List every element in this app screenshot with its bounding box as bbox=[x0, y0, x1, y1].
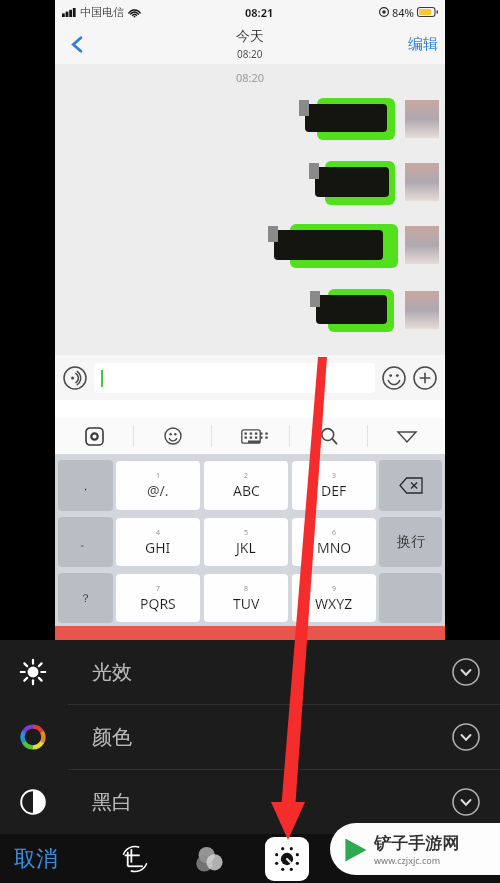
button[interactable]: 取消 bbox=[14, 845, 58, 873]
button[interactable]: 7 bbox=[116, 574, 200, 622]
button[interactable]: 调整 bbox=[265, 837, 309, 881]
staticText: JKL bbox=[236, 538, 256, 557]
staticText: 3 bbox=[332, 471, 337, 481]
staticText: 铲子手游网 bbox=[374, 833, 459, 854]
button[interactable]: 收起 bbox=[368, 418, 445, 454]
staticText: 5 bbox=[244, 528, 249, 538]
button[interactable] bbox=[328, 289, 394, 332]
staticText: PQRS bbox=[140, 594, 176, 613]
staticText: 1 bbox=[156, 471, 161, 481]
button[interactable] bbox=[290, 224, 398, 268]
staticText: 2 bbox=[244, 471, 249, 481]
staticText: 黑白 bbox=[92, 790, 132, 815]
button[interactable]: 搜索 bbox=[290, 418, 367, 454]
staticText: 4 bbox=[156, 528, 161, 538]
staticText: 取消 bbox=[14, 845, 58, 873]
button[interactable]: ， bbox=[58, 460, 113, 511]
button[interactable]: 4 bbox=[116, 518, 200, 566]
staticText: ， bbox=[80, 479, 91, 493]
button[interactable]: 滤镜 bbox=[188, 837, 232, 881]
button[interactable]: 返回 bbox=[59, 26, 95, 62]
button[interactable]: 标记 bbox=[340, 837, 384, 881]
button[interactable]: 9 bbox=[292, 574, 376, 622]
staticText: www.czjxjc.com bbox=[374, 854, 441, 866]
button[interactable] bbox=[325, 161, 395, 205]
button[interactable]: 编辑 bbox=[408, 35, 438, 54]
button[interactable]: 1 bbox=[116, 461, 200, 510]
staticText: 8 bbox=[244, 584, 249, 594]
staticText: 中国电信 bbox=[80, 5, 124, 19]
button[interactable] bbox=[317, 98, 395, 140]
staticText: 换行 bbox=[397, 533, 425, 551]
staticText: ？ bbox=[80, 591, 91, 605]
staticText: 编辑 bbox=[408, 35, 438, 54]
staticText: 9 bbox=[332, 584, 337, 594]
staticText: 08:21 bbox=[245, 5, 274, 20]
button[interactable]: 输入法 bbox=[55, 418, 133, 454]
staticText: 08:20 bbox=[236, 70, 265, 85]
button[interactable]: 3 bbox=[292, 461, 376, 510]
staticText: 7 bbox=[156, 584, 161, 594]
staticText: WXYZ bbox=[315, 594, 353, 613]
button[interactable]: 黑白 bbox=[0, 770, 500, 834]
staticText: 84% bbox=[392, 5, 414, 20]
button[interactable]: ？ bbox=[58, 573, 113, 623]
button[interactable]: 换行 bbox=[379, 517, 442, 567]
staticText: 今天 bbox=[236, 28, 264, 46]
button[interactable]: 删除 bbox=[379, 460, 442, 511]
button[interactable]: 5 bbox=[204, 518, 288, 566]
staticText: DEF bbox=[321, 481, 347, 500]
staticText: 光效 bbox=[92, 660, 132, 685]
staticText: 。 bbox=[80, 535, 91, 549]
staticText: 颜色 bbox=[92, 725, 132, 750]
staticText: 08:20 bbox=[237, 47, 263, 61]
staticText: GHI bbox=[145, 538, 171, 557]
button[interactable]: 语音 bbox=[62, 365, 88, 391]
button[interactable]: 表情 bbox=[134, 418, 211, 454]
button[interactable]: 6 bbox=[292, 518, 376, 566]
button[interactable]: 颜色 bbox=[0, 705, 500, 769]
staticText: TUV bbox=[233, 594, 260, 613]
button[interactable]: 表情 bbox=[381, 365, 407, 391]
staticText: 6 bbox=[332, 528, 337, 538]
button[interactable]: 光效 bbox=[0, 640, 500, 704]
button[interactable] bbox=[94, 363, 375, 393]
button[interactable]: 键盘 bbox=[212, 418, 289, 454]
button[interactable]: 裁剪 bbox=[113, 837, 157, 881]
button[interactable]: 2 bbox=[204, 461, 288, 510]
staticText: ABC bbox=[233, 481, 260, 500]
staticText: @/. bbox=[147, 481, 169, 500]
button[interactable]: 8 bbox=[204, 574, 288, 622]
button[interactable]: 更多 bbox=[412, 365, 438, 391]
staticText: MNO bbox=[317, 538, 352, 557]
